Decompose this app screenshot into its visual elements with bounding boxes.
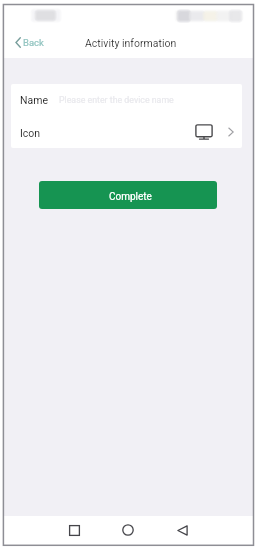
- button[interactable]: Home: [113, 515, 143, 545]
- staticText: Please enter the device name: [59, 95, 174, 105]
- staticText: Activity information: [85, 37, 177, 49]
- button[interactable]: Back: [4, 27, 52, 58]
- staticText: Back: [23, 37, 44, 48]
- button[interactable]: Back: [167, 515, 197, 545]
- staticText: Icon: [20, 127, 41, 139]
- button[interactable]: Icon: [11, 116, 242, 148]
- staticText: Name: [20, 94, 48, 106]
- button[interactable]: Complete: [39, 181, 217, 209]
- button[interactable]: Recent apps: [59, 515, 89, 545]
- button[interactable]: Name: [11, 84, 242, 116]
- staticText: Complete: [109, 191, 152, 203]
